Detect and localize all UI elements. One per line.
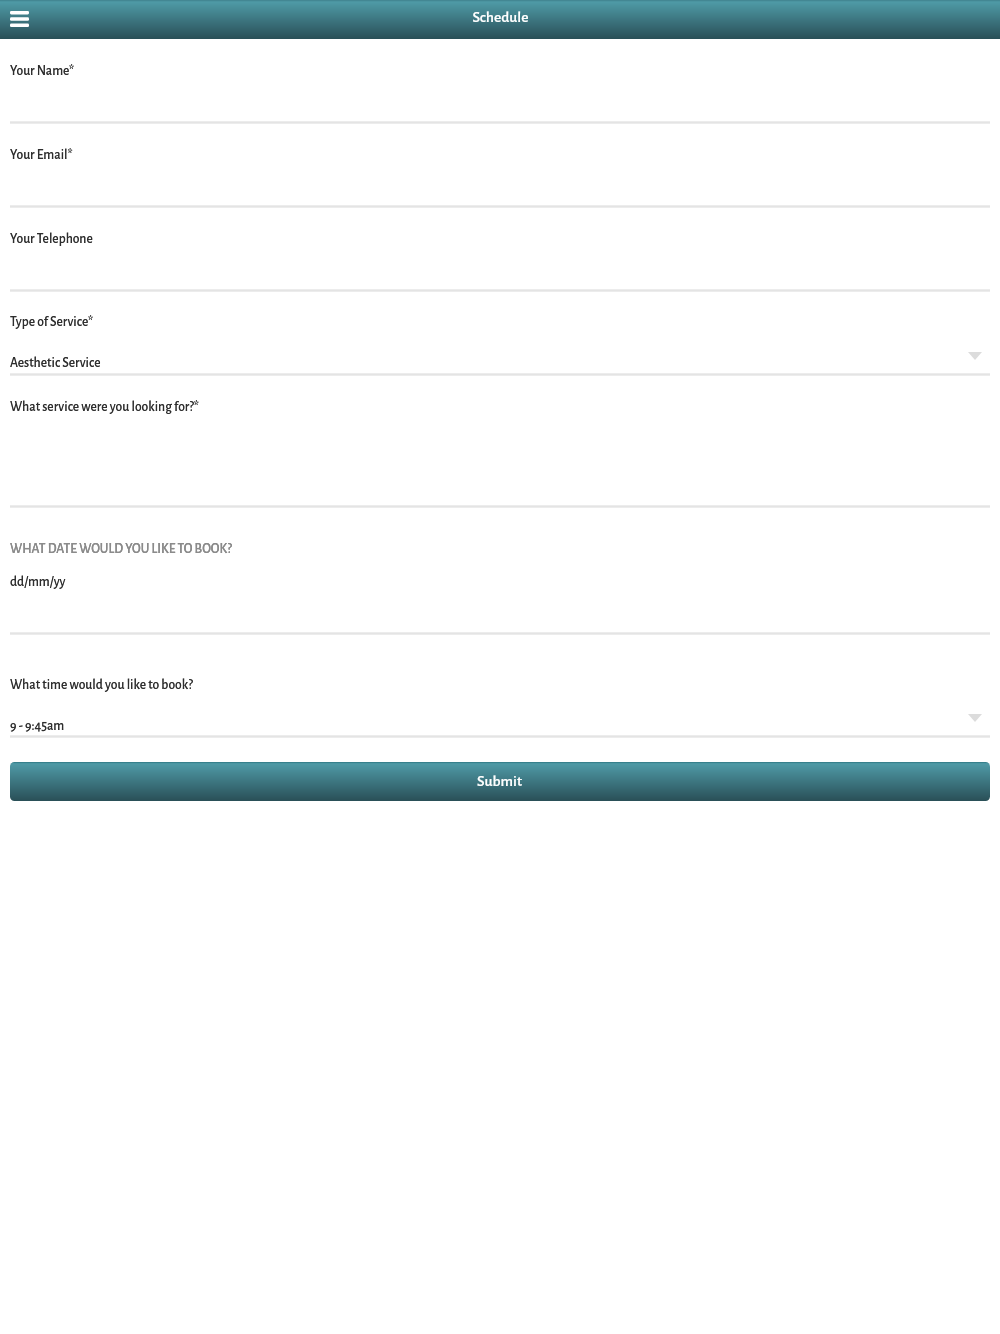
staticText: Your Name* [10,64,75,78]
button[interactable]: What time would you like to book, 9 - 9:… [0,703,1000,736]
button[interactable]: Your Email, required text field [0,123,1000,206]
button[interactable]: What date would you like to book, date f… [0,507,1000,633]
staticText: WHAT DATE WOULD YOU LIKE TO BOOK? [10,542,232,556]
button[interactable]: Submit [10,762,990,801]
staticText: What service were you looking for?* [10,400,199,414]
staticText: What service were you looking for?* [10,400,199,414]
staticText: Your Name* [10,64,75,78]
staticText: Type of Service* [10,315,94,329]
staticText: Aesthetic Service [10,356,101,370]
staticText: Your Email* [10,148,73,162]
staticText: Your Telephone [10,232,93,246]
staticText: Submit [477,774,523,790]
staticText: dd/mm/yy [10,575,66,589]
staticText: Aesthetic Service [10,356,101,370]
staticText: dd/mm/yy [10,575,66,589]
staticText: Type of Service* [10,315,94,329]
button[interactable]: Type of Service, Aesthetic Service, drop… [0,340,1000,374]
staticText: Your Email* [10,148,73,162]
staticText: 9 - 9:45am [10,719,65,733]
staticText: WHAT DATE WOULD YOU LIKE TO BOOK? [10,542,232,556]
button[interactable]: What service were you looking for, requi… [0,375,1000,506]
staticText: Your Telephone [10,232,93,246]
staticText: 9 - 9:45am [10,719,65,733]
staticText: What time would you like to book? [10,678,193,692]
button[interactable]: Your Name, required text field [0,40,1000,122]
button[interactable]: Open navigation menu [0,1,39,37]
button[interactable]: Your Telephone text field [0,207,1000,290]
staticText: What time would you like to book? [10,678,193,692]
staticText: Schedule [472,10,529,26]
